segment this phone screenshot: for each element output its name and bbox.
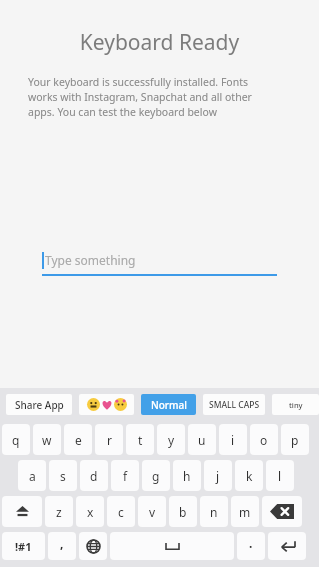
button[interactable]: x bbox=[76, 496, 104, 527]
staticText: , bbox=[60, 535, 64, 551]
staticText: a bbox=[29, 468, 36, 484]
staticText: v bbox=[149, 504, 156, 520]
staticText: p bbox=[291, 432, 299, 448]
staticText: t bbox=[138, 432, 143, 448]
staticText: x bbox=[87, 504, 94, 520]
button[interactable]: q bbox=[2, 424, 30, 455]
button[interactable]: s bbox=[49, 460, 77, 491]
staticText: Type something bbox=[45, 252, 136, 268]
button[interactable]: w bbox=[33, 424, 61, 455]
button[interactable]: n bbox=[200, 496, 228, 527]
staticText: b bbox=[179, 504, 187, 520]
staticText: i bbox=[231, 432, 235, 448]
button[interactable]: r bbox=[95, 424, 123, 455]
button[interactable]: Change language bbox=[79, 532, 107, 560]
staticText: e bbox=[75, 432, 82, 448]
button[interactable]: u bbox=[188, 424, 216, 455]
staticText: Keyboard Ready bbox=[0, 28, 319, 57]
staticText: s bbox=[60, 468, 66, 484]
button[interactable]: g bbox=[142, 460, 170, 491]
button[interactable]: m bbox=[231, 496, 259, 527]
staticText: Share App bbox=[15, 398, 64, 412]
staticText: o bbox=[260, 432, 268, 448]
button[interactable]: , bbox=[48, 532, 76, 560]
button[interactable]: i bbox=[219, 424, 247, 455]
staticText: w bbox=[42, 432, 52, 448]
button[interactable]: . bbox=[237, 532, 265, 560]
staticText: y bbox=[168, 432, 175, 448]
button[interactable]: f bbox=[111, 460, 139, 491]
staticText: l bbox=[278, 468, 282, 484]
button[interactable]: l bbox=[266, 460, 294, 491]
button[interactable]: t bbox=[126, 424, 154, 455]
staticText: c bbox=[118, 504, 124, 520]
staticText: k bbox=[246, 468, 253, 484]
button[interactable]: j bbox=[204, 460, 232, 491]
button[interactable]: z bbox=[45, 496, 73, 527]
staticText: d bbox=[90, 468, 98, 484]
staticText: q bbox=[12, 432, 20, 448]
button[interactable]: h bbox=[173, 460, 201, 491]
button[interactable]: k bbox=[235, 460, 263, 491]
staticText: SMALL CAPS bbox=[209, 399, 260, 411]
staticText: r bbox=[107, 432, 112, 448]
button[interactable]: c bbox=[107, 496, 135, 527]
staticText: !#1 bbox=[15, 539, 32, 554]
button[interactable]: e bbox=[64, 424, 92, 455]
button[interactable]: a bbox=[18, 460, 46, 491]
button[interactable]: o bbox=[250, 424, 278, 455]
staticText: n bbox=[210, 504, 218, 520]
button[interactable]: d bbox=[80, 460, 108, 491]
staticText: h bbox=[183, 468, 191, 484]
staticText: Normal bbox=[151, 398, 187, 412]
button[interactable]: v bbox=[138, 496, 166, 527]
button[interactable]: Backspace bbox=[262, 496, 302, 527]
button[interactable]: tiny bbox=[272, 394, 319, 415]
button[interactable]: Space bbox=[110, 532, 234, 560]
button[interactable]: Shift bbox=[2, 496, 42, 527]
staticText: j bbox=[216, 468, 220, 484]
button[interactable]: !#1 bbox=[2, 532, 45, 560]
staticText: Your keyboard is successfully installed.… bbox=[28, 75, 275, 119]
button[interactable]: y bbox=[157, 424, 185, 455]
button[interactable]: p bbox=[281, 424, 309, 455]
staticText: m bbox=[239, 504, 251, 520]
button[interactable]: SMALL CAPS bbox=[203, 394, 265, 415]
button[interactable]: b bbox=[169, 496, 197, 527]
staticText: tiny bbox=[289, 400, 303, 410]
button[interactable]: Share App bbox=[6, 394, 72, 415]
staticText: f bbox=[123, 468, 128, 484]
button[interactable]: Type something bbox=[42, 248, 277, 276]
button[interactable]: Normal bbox=[141, 394, 196, 415]
staticText: . bbox=[249, 535, 253, 551]
button[interactable]: Enter bbox=[268, 532, 306, 560]
staticText: g bbox=[152, 468, 160, 484]
staticText: z bbox=[56, 504, 62, 520]
staticText: u bbox=[198, 432, 206, 448]
button[interactable]: Emoji bbox=[79, 394, 134, 415]
